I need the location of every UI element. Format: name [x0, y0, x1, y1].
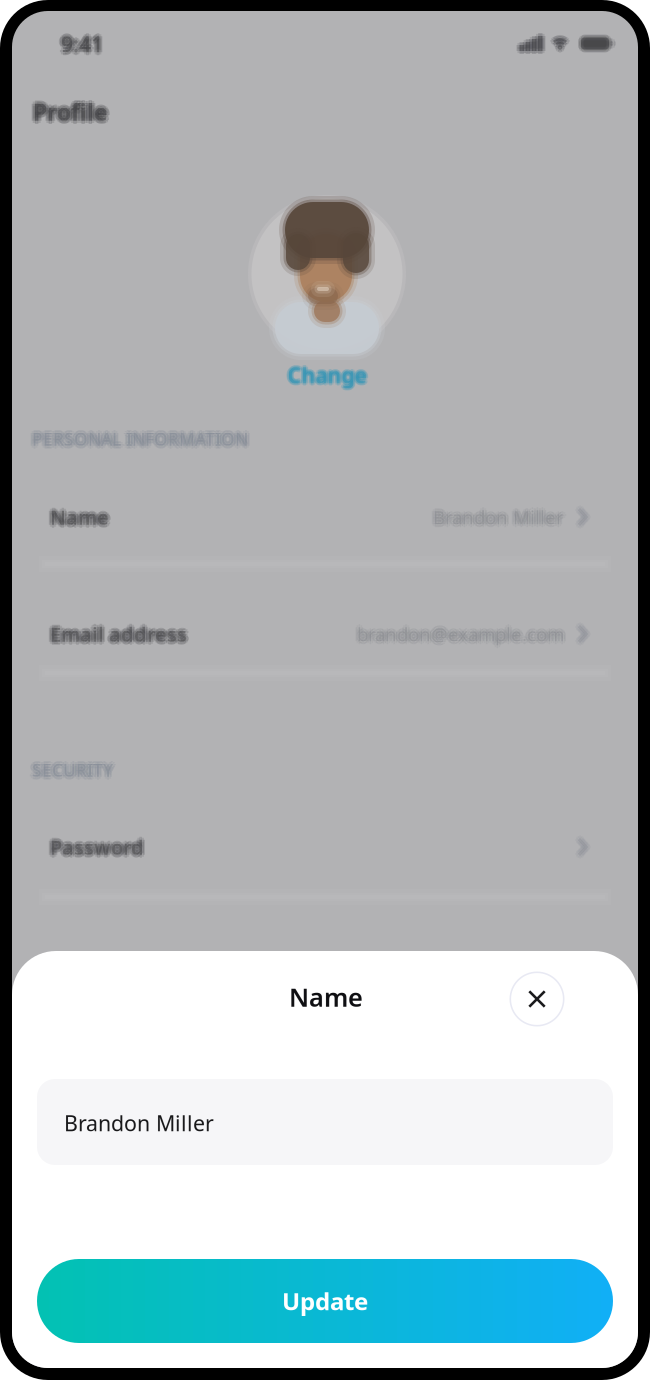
staticText: Change — [289, 362, 368, 391]
staticText: Brandon Miller — [436, 505, 567, 529]
staticText: Brandon Miller — [431, 507, 562, 531]
staticText: Profile — [33, 100, 108, 130]
staticText: brandon@example.com — [359, 624, 566, 648]
staticText: brandon@example.com — [354, 622, 561, 646]
staticText: Name — [52, 502, 111, 528]
button[interactable]: Brandon Miller — [37, 1079, 613, 1165]
staticText: SECURITY — [32, 755, 113, 778]
staticText: Profile — [33, 94, 108, 124]
staticText: SECURITY — [34, 761, 115, 784]
staticText: SECURITY — [30, 756, 111, 779]
staticText: Password — [52, 832, 146, 858]
staticText: 9:41 — [61, 30, 103, 58]
staticText: Email address — [50, 624, 187, 650]
staticText: Profile — [31, 95, 106, 125]
staticText: brandon@example.com — [355, 619, 562, 644]
staticText: Change — [286, 359, 365, 388]
staticText: Brandon Miller — [64, 1109, 214, 1137]
staticText: Profile — [33, 97, 108, 127]
staticText: SECURITY — [29, 758, 110, 781]
staticText: Update — [282, 1285, 368, 1317]
staticText: Profile — [35, 95, 110, 125]
staticText: Password — [50, 831, 144, 857]
staticText: 9:41 — [61, 27, 103, 55]
staticText: brandon@example.com — [360, 622, 567, 646]
button[interactable] — [509, 971, 564, 1026]
staticText: 9:41 — [59, 32, 101, 60]
staticText: PERSONAL INFORMATION — [35, 427, 251, 450]
staticText: Email address — [52, 619, 189, 645]
staticText: Email address — [48, 623, 185, 649]
staticText: Email address — [47, 621, 184, 647]
staticText: Profile — [35, 99, 110, 129]
staticText: Brandon Miller — [433, 502, 564, 526]
staticText: Email address — [52, 623, 189, 649]
staticText: SECURITY — [32, 758, 113, 781]
staticText: Brandon Miller — [435, 502, 566, 527]
staticText: PERSONAL INFORMATION — [34, 430, 250, 453]
staticText: PERSONAL INFORMATION — [32, 424, 248, 447]
staticText: Name — [47, 504, 106, 530]
staticText: SECURITY — [32, 761, 113, 784]
staticText: 9:41 — [63, 32, 105, 60]
staticText: Name — [50, 501, 109, 527]
staticText: Brandon Miller — [433, 505, 564, 529]
staticText: Profile — [31, 99, 106, 129]
staticText: SECURITY — [34, 756, 115, 779]
staticText: Change — [287, 359, 366, 387]
staticText: 9:41 — [63, 28, 105, 56]
staticText: Password — [50, 837, 144, 863]
staticText: Name — [50, 504, 109, 530]
staticText: Email address — [50, 618, 187, 644]
staticText: Name — [48, 502, 107, 528]
staticText: Email address — [53, 621, 190, 647]
staticText: Password — [52, 836, 146, 862]
staticText: Name — [53, 504, 112, 530]
staticText: Password — [48, 832, 142, 858]
staticText: PERSONAL INFORMATION — [30, 425, 246, 448]
staticText: SECURITY — [30, 761, 111, 784]
button[interactable]: Email address — [12, 588, 638, 680]
staticText: Brandon Miller — [430, 505, 561, 529]
staticText: 9:41 — [58, 30, 100, 58]
button[interactable]: Name — [12, 471, 638, 563]
staticText: Password — [50, 834, 144, 860]
staticText: brandon@example.com — [357, 625, 564, 649]
staticText: brandon@example.com — [357, 622, 564, 646]
staticText: Change — [289, 359, 368, 388]
staticText: brandon@example.com — [357, 619, 564, 643]
button[interactable]: Password — [12, 801, 638, 893]
staticText: PERSONAL INFORMATION — [34, 425, 250, 448]
staticText: brandon@example.com — [355, 624, 562, 648]
staticText: brandon@example.com — [359, 619, 566, 644]
staticText: 9:41 — [64, 30, 106, 58]
staticText: Email address — [50, 621, 187, 647]
button[interactable]: Change — [287, 361, 366, 389]
staticText: Change — [287, 363, 366, 391]
staticText: Password — [47, 834, 141, 860]
staticText: Brandon Miller — [433, 508, 564, 532]
staticText: Change — [290, 361, 369, 389]
staticText: Name — [289, 980, 363, 1014]
staticText: Password — [53, 834, 147, 860]
staticText: Email address — [48, 619, 185, 645]
staticText: PERSONAL INFORMATION — [32, 430, 248, 453]
staticText: Name — [52, 506, 111, 532]
staticText: Profile — [30, 97, 105, 127]
staticText: Change — [286, 362, 365, 391]
staticText: Change — [287, 361, 366, 389]
staticText: 9:41 — [61, 33, 103, 61]
staticText: Password — [48, 836, 142, 862]
staticText: PERSONAL INFORMATION — [30, 430, 246, 453]
staticText: Name — [48, 506, 107, 532]
staticText: Name — [50, 507, 109, 533]
staticText: 9:41 — [59, 28, 101, 56]
staticText: Brandon Miller — [431, 502, 562, 527]
staticText: Brandon Miller — [435, 507, 566, 531]
staticText: PERSONAL INFORMATION — [29, 427, 245, 450]
staticText: PERSONAL INFORMATION — [32, 427, 248, 450]
staticText: Change — [285, 361, 364, 389]
staticText: Profile — [36, 97, 111, 127]
button[interactable]: Update — [37, 1259, 613, 1343]
staticText: SECURITY — [35, 758, 116, 781]
